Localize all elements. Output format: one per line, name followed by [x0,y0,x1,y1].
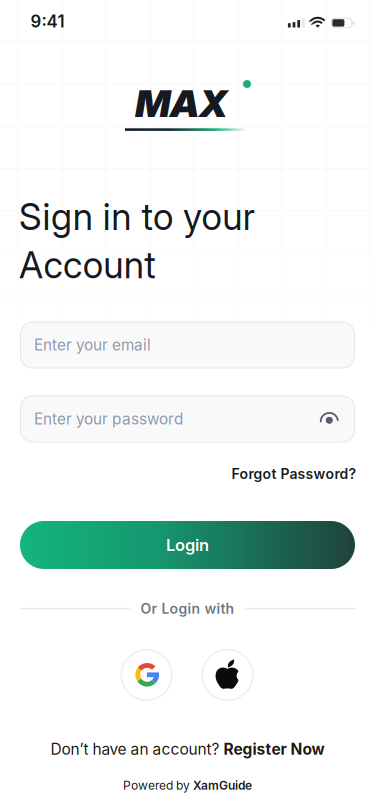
button[interactable]: Login [20,521,355,569]
staticText: Sign in to your Account [19,195,255,287]
button[interactable]: Login with Google [120,649,172,701]
staticText: MAX [135,80,228,126]
button[interactable]: Forgot Password? [21,465,356,482]
staticText: Powered by XamGuide [123,778,252,793]
button[interactable]: Show password [0,0,375,812]
button[interactable]: Login with Apple [201,649,253,701]
staticText: Or Login with [140,600,234,617]
staticText: Enter your password [34,410,183,428]
staticText: Forgot Password? [231,465,356,482]
button[interactable]: Enter your email [20,321,355,368]
staticText: 9:41 [30,11,64,31]
staticText: Don’t have an account? Register Now [50,740,324,758]
staticText: Enter your email [34,336,151,354]
button[interactable]: Don’t have an account? Register Now [50,740,324,758]
button[interactable]: Enter your password [20,395,355,442]
staticText: Login [166,535,209,555]
